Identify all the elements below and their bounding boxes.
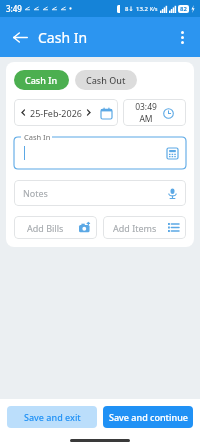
- button[interactable]: Save and exit: [7, 406, 97, 428]
- staticText: Add Bills: [27, 222, 64, 234]
- staticText: Cash In: [25, 74, 58, 86]
- other: Pick time: [161, 106, 175, 120]
- other: Next day: [85, 109, 92, 116]
- other: Previous day: [20, 109, 27, 116]
- staticText: AM: [139, 113, 153, 125]
- button[interactable]: Cash Out: [75, 70, 137, 90]
- button[interactable]: Add Items: [103, 216, 186, 239]
- staticText: 8↓: [125, 5, 134, 13]
- staticText: Save and exit: [24, 411, 81, 423]
- staticText: Save and continue: [109, 411, 188, 423]
- button[interactable]: Save and continue: [103, 406, 193, 428]
- staticText: 25-Feb-2026: [30, 107, 82, 119]
- staticText: Notes: [23, 187, 48, 199]
- button[interactable]: Calculator: [165, 146, 179, 160]
- staticText: Cash In: [24, 132, 51, 142]
- staticText: Cash Out: [86, 74, 126, 86]
- button[interactable]: Cash In: [14, 70, 69, 90]
- button[interactable]: Add Bills: [14, 216, 97, 239]
- staticText: 03:49: [135, 101, 157, 113]
- staticText: Cash In: [38, 28, 88, 47]
- staticText: 3:49: [6, 3, 22, 14]
- button[interactable]: Notes: [14, 180, 186, 206]
- button[interactable]: Previous day: [14, 99, 118, 126]
- button[interactable]: Pick date: [97, 104, 115, 122]
- button[interactable]: Back: [8, 25, 32, 49]
- staticText: K/s: [150, 6, 158, 13]
- staticText: 13.2: [136, 5, 148, 13]
- staticText: Add Items: [113, 222, 157, 234]
- button[interactable]: 03:49: [123, 99, 186, 126]
- other: Voice input: [165, 186, 179, 200]
- staticText: 82: [180, 5, 187, 13]
- button[interactable]: More options: [170, 25, 194, 49]
